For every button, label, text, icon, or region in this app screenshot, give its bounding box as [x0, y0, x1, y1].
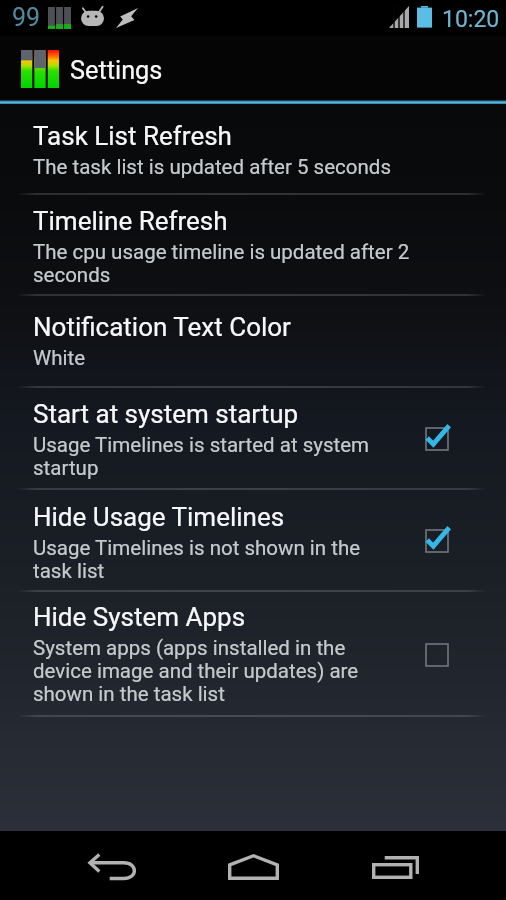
staticText: Start at system startup: [33, 399, 299, 429]
button[interactable]: Notification Text Color: [0, 295, 506, 387]
staticText: White: [33, 346, 86, 370]
staticText: Timeline Refresh: [33, 206, 228, 236]
button[interactable]: Hide System Apps: [0, 591, 506, 716]
button[interactable]: Start at system startup: [412, 414, 460, 462]
staticText: The task list is updated after 5 seconds: [33, 155, 391, 179]
staticText: Notification Text Color: [33, 312, 291, 342]
staticText: Hide Usage Timelines: [33, 502, 285, 532]
button[interactable]: Timeline Refresh: [0, 194, 506, 296]
staticText: System apps (apps installed in the devic…: [33, 636, 381, 706]
staticText: Usage Timelines is not shown in the task…: [33, 536, 381, 583]
staticText: Settings: [70, 56, 163, 86]
button[interactable]: Hide Usage Timelines: [412, 516, 460, 564]
staticText: 99: [12, 3, 41, 32]
staticText: Task List Refresh: [33, 121, 232, 151]
staticText: Hide System Apps: [33, 602, 246, 632]
button[interactable]: Start at system startup: [0, 387, 506, 489]
button[interactable]: Hide Usage Timelines: [0, 489, 506, 591]
button[interactable]: Back: [60, 831, 164, 900]
staticText: Usage Timelines is started at system sta…: [33, 433, 381, 480]
staticText: The cpu usage timeline is updated after …: [33, 240, 458, 287]
staticText: 10:20: [442, 6, 500, 33]
button[interactable]: Task List Refresh: [0, 104, 506, 194]
button[interactable]: Hide System Apps: [412, 630, 460, 678]
button[interactable]: Home: [201, 831, 305, 900]
button[interactable]: Recent apps: [343, 831, 447, 900]
